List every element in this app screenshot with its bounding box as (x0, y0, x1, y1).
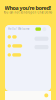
staticText: Hello! Welcome (8, 27, 30, 31)
staticText: Whoa you're bored! (4, 4, 51, 12)
staticText: You can not send/open Chat Demo (3, 11, 52, 14)
